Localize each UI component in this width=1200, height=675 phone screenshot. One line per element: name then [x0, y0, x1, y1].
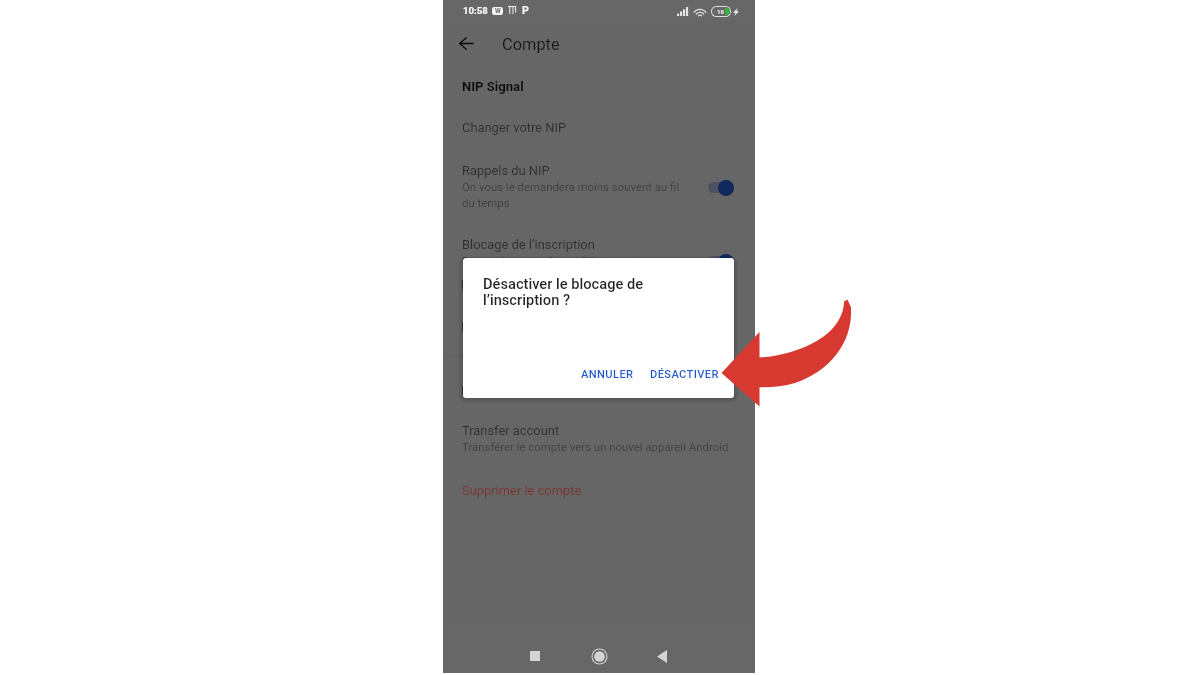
button[interactable]: Back	[648, 642, 676, 670]
button[interactable]: Paiements	[443, 270, 755, 310]
button[interactable]: DÉSACTIVER	[640, 362, 729, 386]
staticText: Supprimer le compte	[462, 483, 582, 498]
staticText: Transfer account	[462, 423, 560, 438]
button[interactable]: Exportation de données	[443, 376, 755, 416]
staticText: DÉSACTIVER	[650, 368, 719, 381]
staticText: Changer votre NIP	[462, 120, 567, 135]
staticText: NIP Signal	[462, 79, 524, 94]
button[interactable]: ANNULER	[571, 362, 644, 386]
button[interactable]: Blocage de l’inscription	[443, 230, 755, 283]
staticText: 10:58	[463, 5, 488, 16]
staticText: Transférer le compte vers un nouvel appa…	[462, 440, 729, 453]
staticText: 18	[717, 8, 725, 15]
staticText: Rappels du NIP	[462, 163, 550, 178]
button[interactable]: Devenir un donateur	[443, 312, 755, 352]
staticText: On vous le demandera moins souvent au fi…	[462, 180, 680, 210]
staticText: Devenir un donateur	[461, 319, 576, 334]
button[interactable]: Recent apps	[521, 642, 549, 670]
button[interactable]: Back	[452, 29, 480, 57]
staticText: ANNULER	[581, 368, 634, 381]
button[interactable]: Home	[585, 642, 613, 670]
staticText: W	[495, 7, 501, 15]
button[interactable]: Supprimer le compte	[443, 476, 755, 516]
staticText: Demandez votre Signal PIN to register	[462, 254, 654, 267]
button[interactable]: Changer votre NIP	[443, 113, 755, 153]
button[interactable]: Rappels du NIP	[443, 156, 755, 226]
staticText: Blocage de l’inscription	[462, 237, 595, 252]
staticText: P	[522, 4, 529, 16]
button[interactable]: Compte	[502, 35, 560, 54]
staticText: Paiements	[461, 277, 523, 292]
staticText: Désactiver le blocage de l’inscription ?	[483, 275, 644, 309]
button[interactable]: NIP Signal	[462, 79, 524, 94]
staticText: Exportation de données	[461, 383, 597, 398]
button[interactable]: Transfer account	[443, 416, 755, 469]
